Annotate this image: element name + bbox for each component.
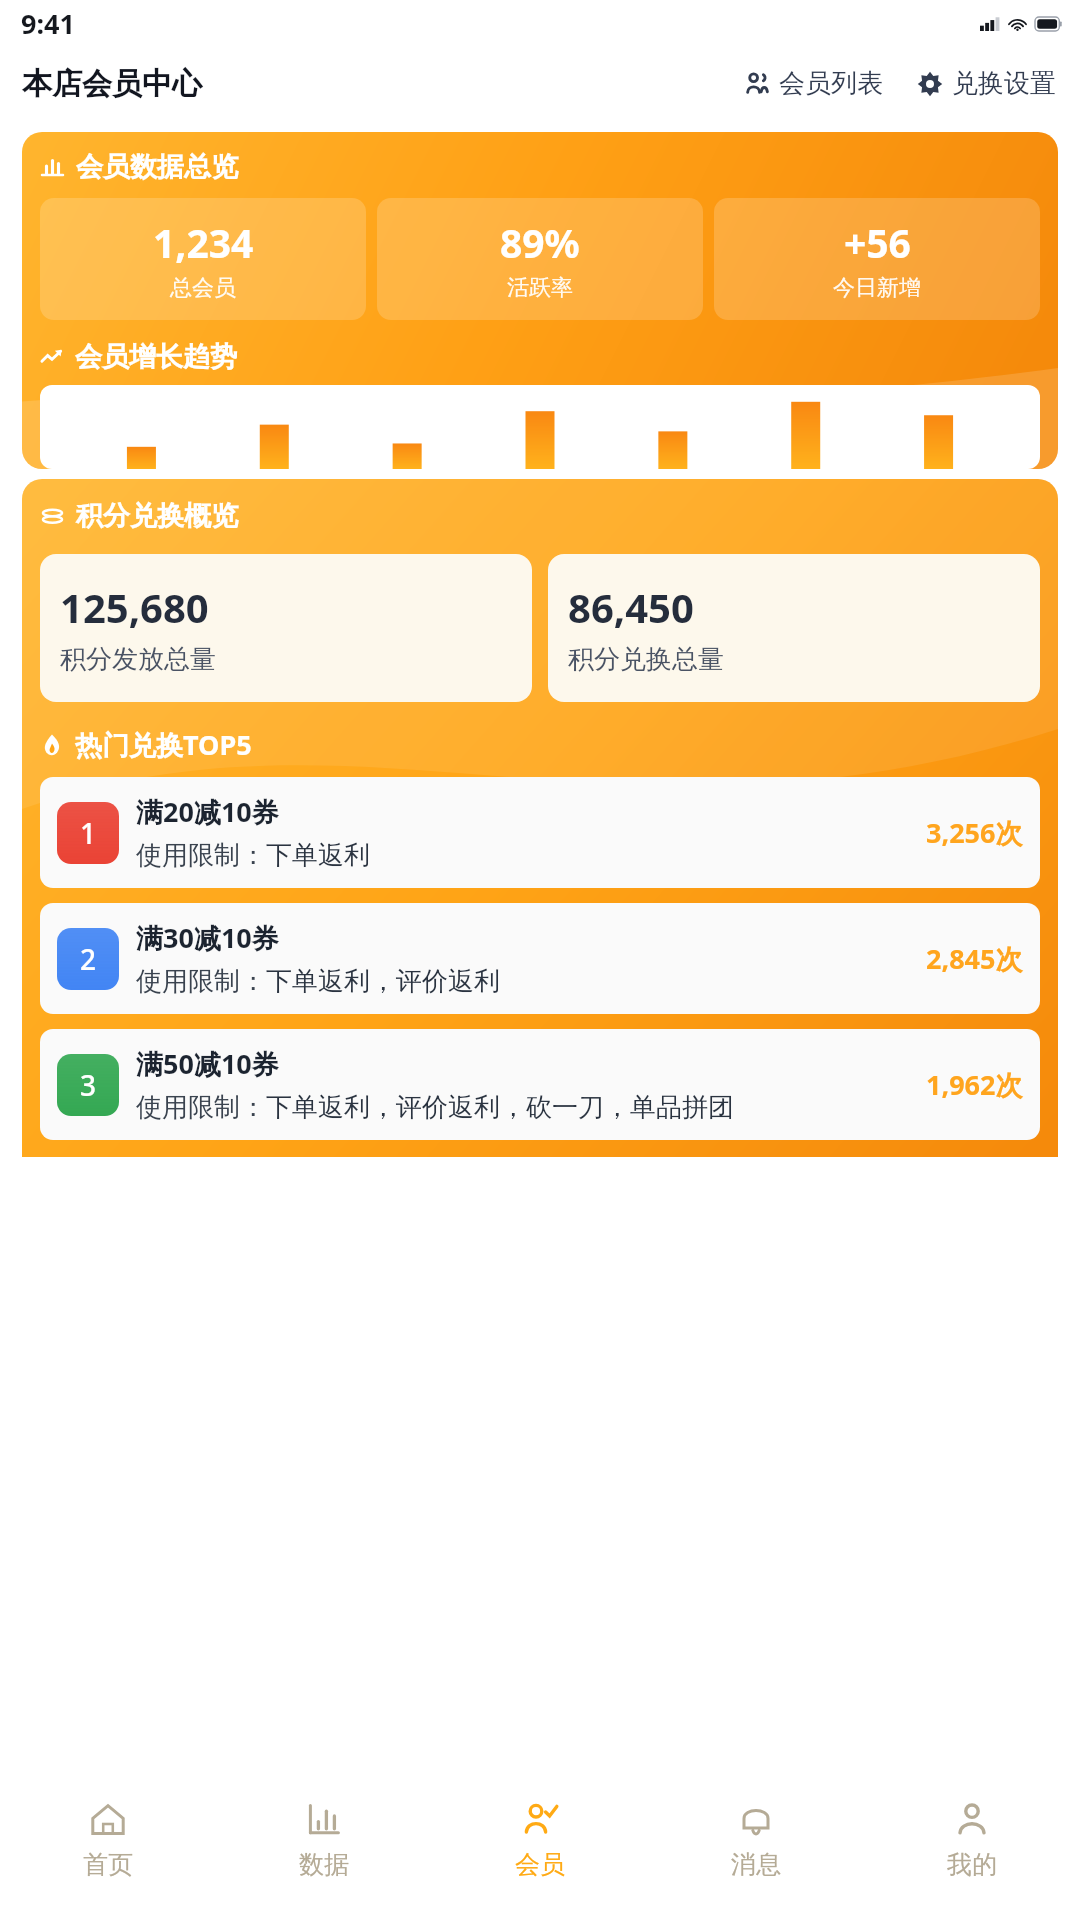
button[interactable]: 3 (40, 1029, 1040, 1140)
staticText: 3,256次 (926, 814, 1023, 851)
staticText: 会员数据总览 (76, 150, 238, 184)
button[interactable]: 89% (377, 198, 703, 320)
staticText: 兑换设置 (952, 67, 1056, 100)
staticText: 活跃率 (507, 274, 573, 302)
button[interactable]: 125,680 (40, 554, 532, 702)
other: 兑换设置 (917, 71, 943, 97)
staticText: 数据 (299, 1849, 349, 1880)
staticText: 86,450 (568, 580, 694, 634)
button[interactable]: 首页 (0, 1782, 216, 1920)
staticText: 会员增长趋势 (75, 340, 237, 374)
staticText: +56 (844, 216, 911, 269)
staticText: 125,680 (60, 580, 209, 634)
staticText: 1 (80, 814, 97, 852)
button[interactable]: 1,234 (40, 198, 366, 320)
button[interactable]: 数据 (216, 1782, 432, 1920)
staticText: 下单返利，评价返利 (266, 965, 500, 998)
button[interactable]: 86,450 (548, 554, 1040, 702)
other: 会员列表 (744, 71, 770, 97)
staticText: 2,845次 (926, 940, 1023, 977)
staticText: 3 (80, 1066, 97, 1104)
button[interactable]: 我的 (864, 1782, 1080, 1920)
button[interactable]: 会员数据总览 (22, 132, 1058, 469)
staticText: 满50减10券 (136, 1045, 279, 1082)
staticText: 1,234 (153, 216, 254, 269)
staticText: 会员列表 (779, 67, 883, 100)
staticText: 消息 (731, 1849, 781, 1880)
staticText: 我的 (947, 1849, 997, 1880)
button[interactable]: 2 (40, 903, 1040, 1014)
staticText: 下单返利 (266, 839, 370, 872)
staticText: 积分兑换总量 (568, 643, 724, 676)
staticText: 会员 (515, 1849, 565, 1880)
staticText: 使用限制： (136, 965, 266, 998)
staticText: 1,962次 (926, 1066, 1023, 1103)
staticText: 使用限制： (136, 839, 266, 872)
staticText: 89% (500, 216, 580, 269)
staticText: 本店会员中心 (22, 65, 202, 103)
staticText: 下单返利，评价返利，砍一刀，单品拼团 (266, 1091, 734, 1124)
button[interactable]: 消息 (648, 1782, 864, 1920)
staticText: 2 (80, 940, 97, 978)
staticText: 使用限制： (136, 1091, 266, 1124)
button[interactable]: 1 (40, 777, 1040, 888)
button[interactable]: 会员列表 (740, 61, 887, 106)
button[interactable]: 兑换设置 (913, 61, 1060, 106)
staticText: 积分兑换概览 (76, 499, 238, 533)
staticText: 总会员 (170, 274, 236, 302)
staticText: 首页 (83, 1849, 133, 1880)
staticText: 满30减10券 (136, 919, 279, 956)
staticText: 热门兑换TOP5 (75, 726, 252, 763)
staticText: 满20减10券 (136, 793, 279, 830)
button[interactable]: +56 (714, 198, 1040, 320)
staticText: 9:41 (21, 5, 75, 42)
button[interactable]: 会员 (432, 1782, 648, 1920)
staticText: 积分发放总量 (60, 643, 216, 676)
staticText: 今日新增 (833, 274, 921, 302)
